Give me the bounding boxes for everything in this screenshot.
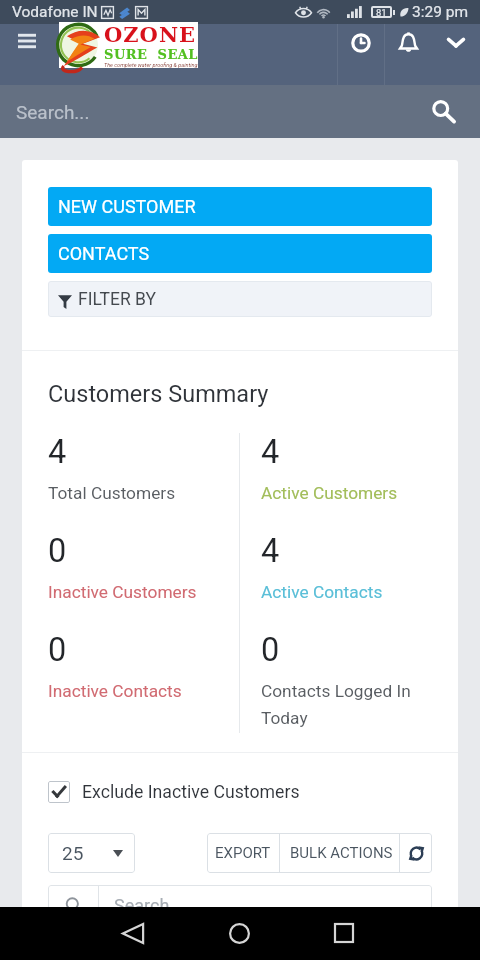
staticText: OZONE: [104, 22, 197, 47]
staticText: Active Customers: [261, 483, 398, 503]
staticText: CONTACTS: [58, 243, 150, 264]
button[interactable]: Search: [48, 885, 432, 925]
staticText: 3:29 pm: [412, 3, 469, 21]
staticText: 0: [261, 631, 280, 669]
staticText: NEW CUSTOMER: [58, 196, 196, 217]
button[interactable]: Notifications: [385, 24, 432, 85]
staticText: 81: [376, 7, 387, 18]
staticText: 0: [48, 631, 67, 669]
button[interactable]: Ozone Sure Seal logo: [59, 22, 198, 68]
button[interactable]: Home: [213, 908, 265, 960]
staticText: Inactive Contacts: [48, 681, 182, 701]
staticText: FILTER BY: [78, 289, 156, 310]
staticText: The complete water proofing & painting s…: [104, 62, 198, 68]
button[interactable]: Open menu: [0, 24, 44, 85]
button[interactable]: Search...: [0, 85, 480, 138]
staticText: Search...: [16, 101, 90, 123]
staticText: BULK ACTIONS: [290, 844, 393, 862]
staticText: 4: [261, 433, 280, 471]
staticText: Vodafone IN: [12, 3, 98, 21]
button[interactable]: Exclude Inactive Customers: [48, 781, 432, 803]
button[interactable]: NEW CUSTOMER: [48, 187, 432, 226]
staticText: SURE SEAL: [104, 47, 198, 62]
staticText: 0: [48, 532, 67, 570]
button[interactable]: FILTER BY: [48, 281, 432, 317]
button[interactable]: More options: [432, 24, 480, 85]
button[interactable]: Recent apps: [318, 908, 370, 960]
button[interactable]: CONTACTS: [48, 234, 432, 273]
staticText: EXPORT: [215, 844, 271, 862]
staticText: Active Contacts: [261, 582, 383, 602]
staticText: Inactive Customers: [48, 582, 197, 602]
staticText: 4: [261, 532, 280, 570]
staticText: 4: [48, 433, 67, 471]
button[interactable]: Refresh: [400, 833, 432, 873]
button[interactable]: Back: [107, 908, 159, 960]
staticText: Search: [114, 895, 170, 916]
button[interactable]: EXPORT: [207, 833, 279, 873]
staticText: 25: [62, 842, 84, 864]
staticText: Contacts Logged In Today: [261, 681, 432, 729]
button[interactable]: BULK ACTIONS: [280, 833, 399, 873]
button[interactable]: 25: [48, 833, 135, 873]
staticText: Total Customers: [48, 483, 176, 503]
staticText: Exclude Inactive Customers: [82, 782, 300, 803]
staticText: Customers Summary: [48, 380, 269, 408]
button[interactable]: Recent activity: [338, 24, 384, 85]
